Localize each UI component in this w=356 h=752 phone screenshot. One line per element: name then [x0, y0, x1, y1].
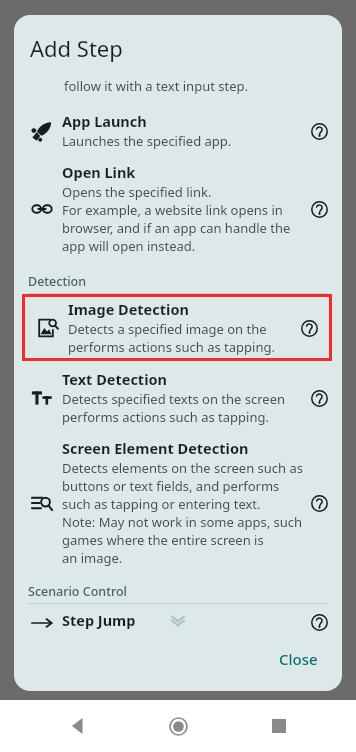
- staticText: Text Detection: [62, 369, 167, 389]
- staticText: Note: May not work in some apps, such as: [62, 513, 306, 531]
- staticText: Image Detection: [68, 299, 189, 319]
- button[interactable]: App Launch: [14, 105, 342, 156]
- staticText: Detects specified texts on the screen an…: [62, 390, 306, 408]
- staticText: Detection: [28, 273, 87, 290]
- button[interactable]: Help about Image Detection: [296, 315, 322, 341]
- staticText: Close: [279, 649, 318, 669]
- staticText: Screen Element Detection: [62, 438, 249, 458]
- staticText: Open Link: [62, 162, 136, 182]
- staticText: buttons or text fields, and performs act…: [62, 477, 306, 495]
- staticText: Add Step: [30, 33, 123, 63]
- button[interactable]: Screen Element Detection: [14, 432, 342, 573]
- staticText: performs actions such as tapping.: [68, 338, 275, 356]
- staticText: Scenario Control: [28, 583, 127, 600]
- button[interactable]: Recent apps: [256, 703, 302, 749]
- staticText: Detects elements on the screen such as: [62, 459, 304, 477]
- staticText: follow it with a text input step.: [64, 77, 248, 95]
- staticText: app will open instead.: [62, 237, 196, 255]
- staticText: Launches the specified app.: [62, 132, 232, 150]
- button[interactable]: Home: [155, 703, 201, 749]
- button[interactable]: Help about Text Detection: [306, 385, 332, 411]
- staticText: games where the entire screen is rendere…: [62, 531, 306, 549]
- button[interactable]: Step Jump: [14, 604, 342, 641]
- button[interactable]: Help about Open Link: [306, 196, 332, 222]
- staticText: Detects a specified image on the screen …: [68, 320, 296, 338]
- button[interactable]: Back: [55, 703, 101, 749]
- button[interactable]: Text Detection: [14, 361, 342, 432]
- staticText: browser, and if an app can handle the li…: [62, 219, 306, 237]
- button[interactable]: Help about App Launch: [306, 118, 332, 144]
- button[interactable]: Help about Screen Element Detection: [306, 490, 332, 516]
- staticText: Opens the specified link.: [62, 183, 212, 201]
- button[interactable]: Help about Step Jump: [306, 610, 332, 635]
- staticText: an image.: [62, 549, 123, 567]
- staticText: performs actions such as tapping.: [62, 408, 269, 426]
- button[interactable]: Open Link: [14, 156, 342, 261]
- button[interactable]: Close: [267, 641, 330, 677]
- staticText: App Launch: [62, 111, 147, 131]
- staticText: Step Jump: [62, 610, 136, 630]
- staticText: For example, a website link opens in the: [62, 201, 306, 219]
- staticText: such as tapping or entering text.: [62, 495, 261, 513]
- button[interactable]: Image Detection: [22, 294, 332, 361]
